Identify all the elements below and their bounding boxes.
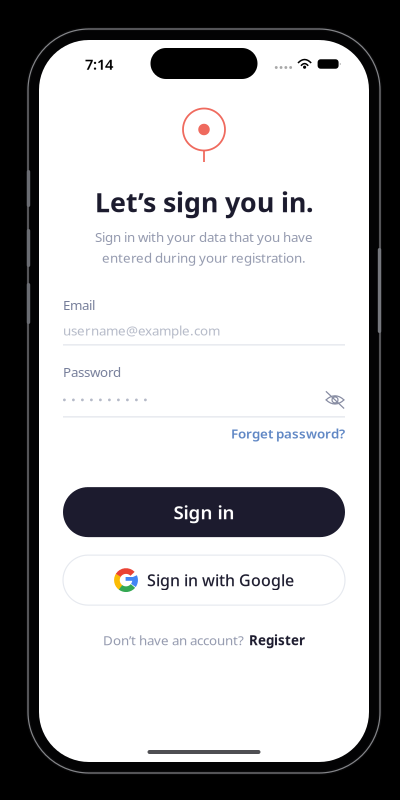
- button[interactable]: Sign in with Google: [63, 555, 345, 605]
- staticText: Password: [63, 363, 121, 381]
- staticText: Forget password?: [231, 424, 345, 442]
- staticText: Sign in with Google: [147, 569, 294, 591]
- staticText: Sign in with your data that you have: [95, 228, 313, 246]
- staticText: 7:14: [85, 54, 113, 74]
- button[interactable]: Don’t have an account?: [103, 631, 305, 649]
- staticText: Don’t have an account?: [103, 631, 244, 649]
- button[interactable]: Forget password?: [231, 424, 345, 442]
- button[interactable]: Show password: [325, 390, 345, 409]
- staticText: Sign in: [173, 500, 234, 524]
- staticText: entered during your registration.: [102, 249, 306, 266]
- staticText: Let’s sign you in.: [95, 184, 313, 220]
- staticText: Register: [249, 631, 305, 649]
- staticText: Email: [63, 296, 95, 314]
- staticText: username@example.com: [63, 322, 220, 339]
- button[interactable]: Sign in: [63, 487, 345, 537]
